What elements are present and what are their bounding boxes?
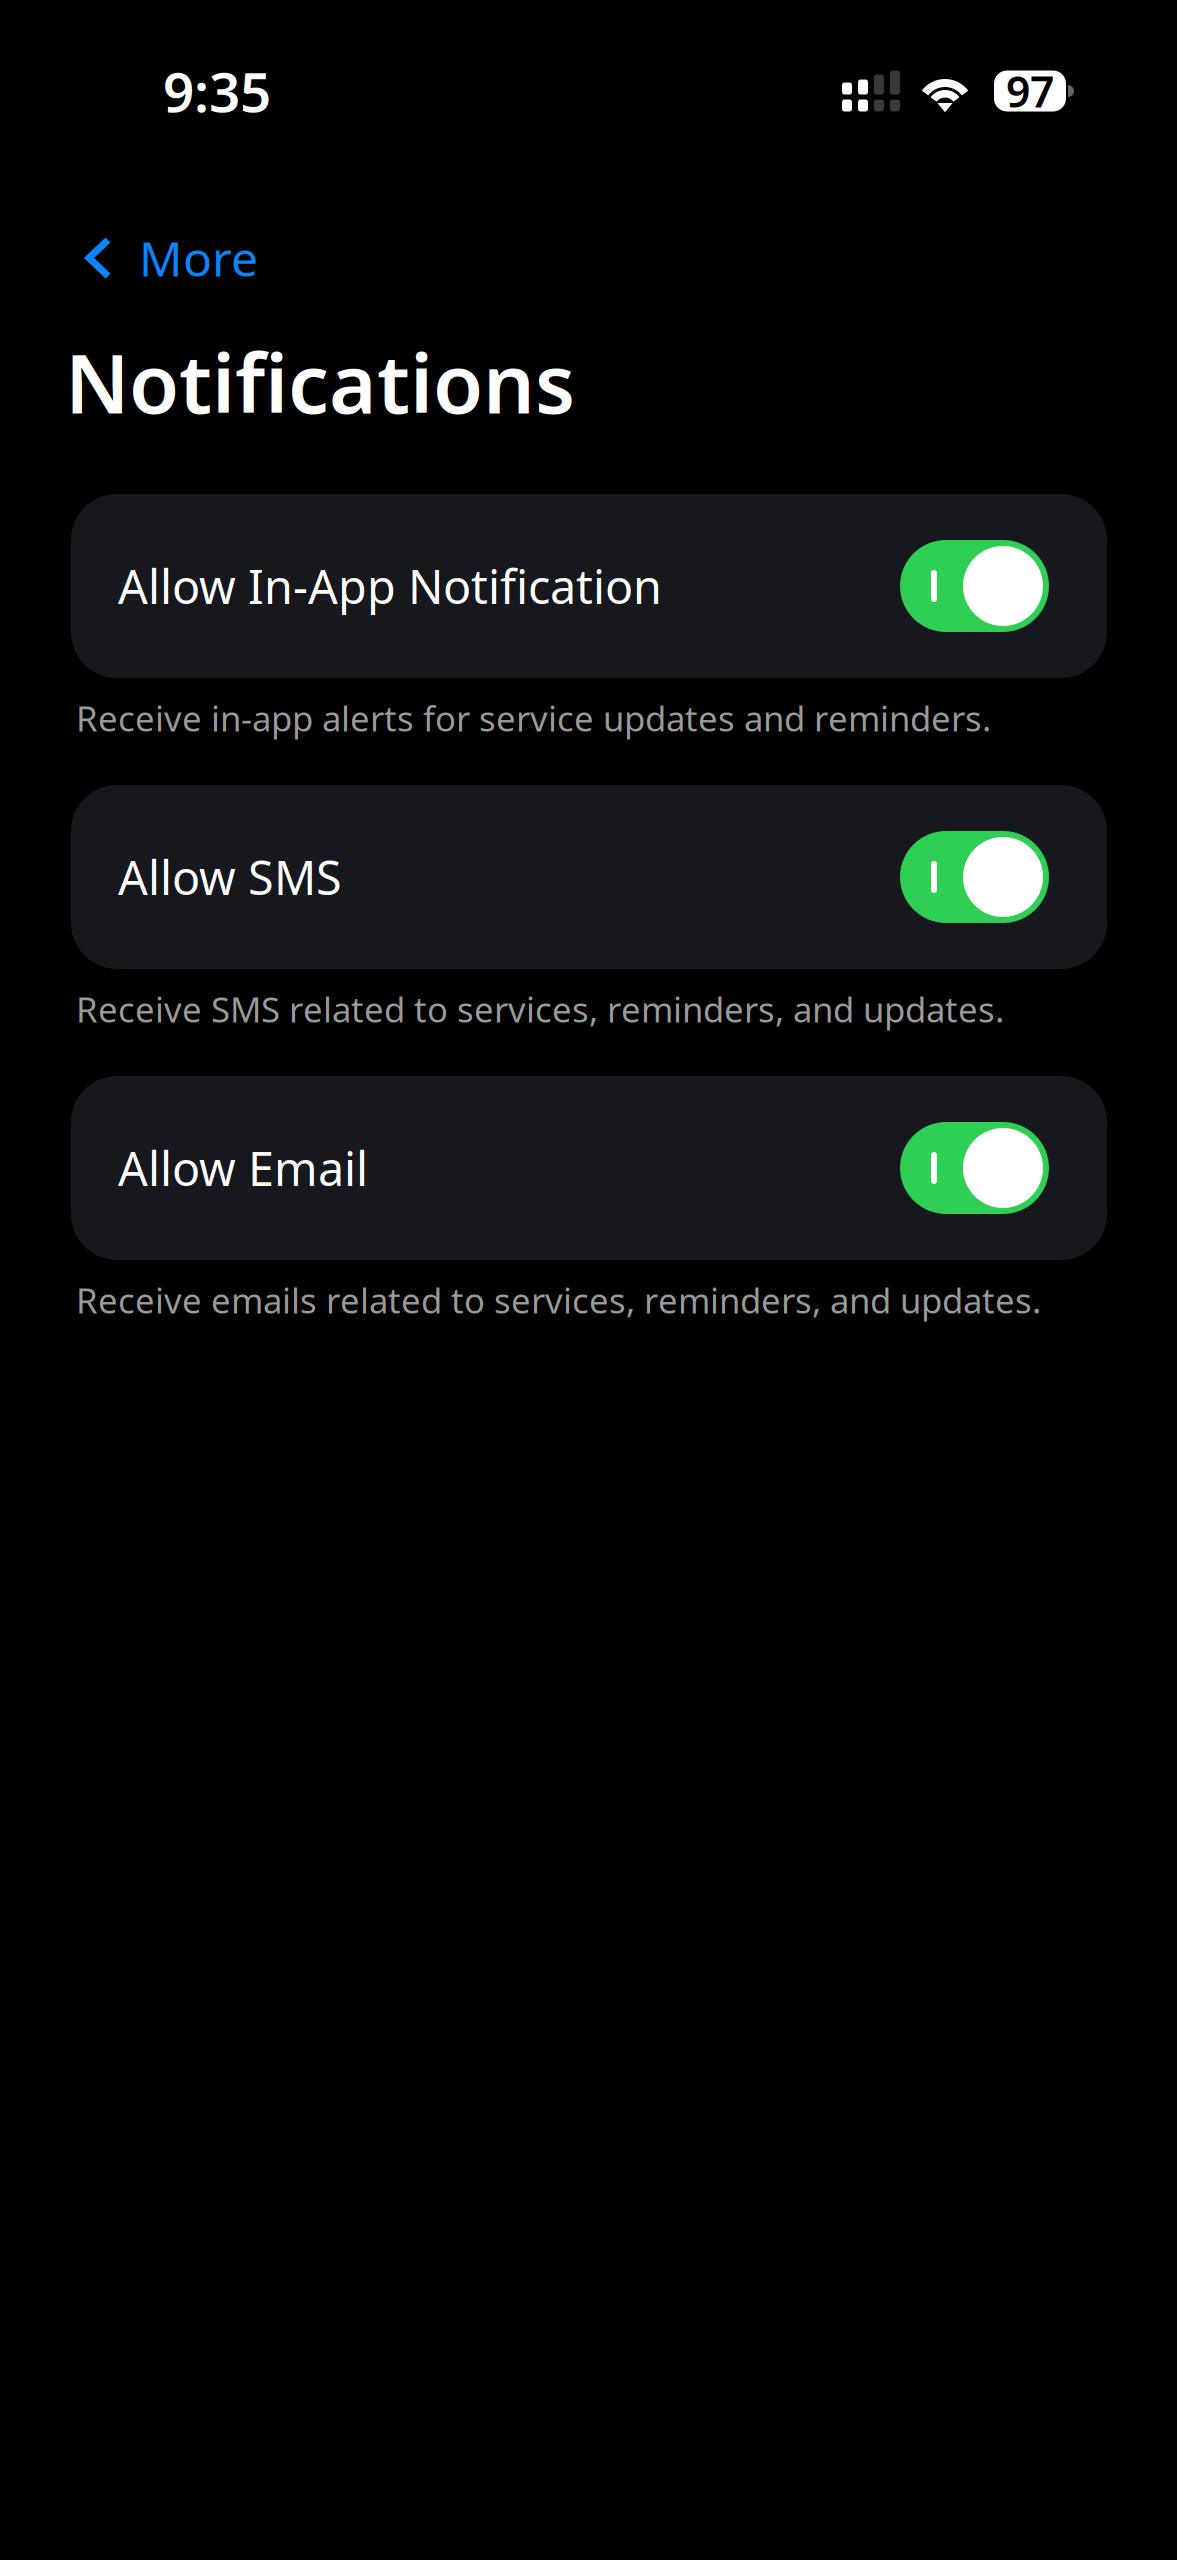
staticText: Receive in-app alerts for service update… — [76, 695, 991, 741]
staticText: Allow Email — [118, 1137, 368, 1199]
button[interactable]: On — [71, 494, 1107, 678]
button[interactable]: On — [71, 1076, 1107, 1260]
button[interactable]: On — [71, 785, 1107, 969]
staticText: 9:35 — [163, 55, 271, 127]
staticText: Notifications — [65, 328, 575, 436]
staticText: Receive SMS related to services, reminde… — [76, 986, 1004, 1032]
staticText: More — [139, 226, 258, 290]
staticText: Receive emails related to services, remi… — [76, 1277, 1041, 1323]
staticText: Allow SMS — [118, 846, 342, 908]
staticText: 97 — [1006, 63, 1054, 119]
button[interactable]: More — [85, 234, 265, 282]
staticText: Allow In-App Notification — [118, 555, 662, 617]
